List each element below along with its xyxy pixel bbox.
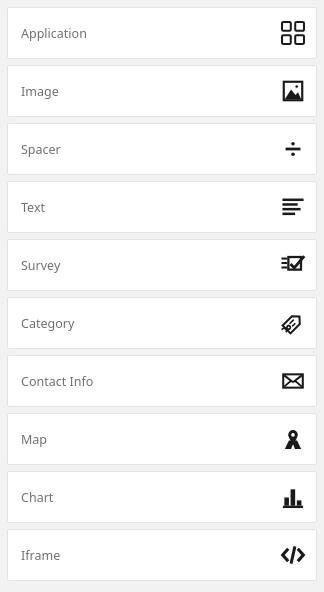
staticText: Text bbox=[21, 199, 281, 216]
staticText: Spacer bbox=[21, 141, 281, 158]
button[interactable]: Text bbox=[7, 181, 317, 233]
other: Application bbox=[281, 21, 305, 45]
button[interactable]: Spacer bbox=[7, 123, 317, 175]
other: Spacer bbox=[281, 137, 305, 161]
button[interactable]: Survey bbox=[7, 239, 317, 291]
button[interactable]: Image bbox=[7, 65, 317, 117]
staticText: Category bbox=[21, 315, 281, 332]
staticText: Survey bbox=[21, 257, 281, 274]
staticText: Iframe bbox=[21, 547, 281, 564]
staticText: Application bbox=[21, 25, 281, 42]
button[interactable]: Contact Info bbox=[7, 355, 317, 407]
button[interactable]: Iframe bbox=[7, 529, 317, 581]
other: Category bbox=[281, 311, 305, 335]
button[interactable]: Application bbox=[7, 7, 317, 59]
other: Image bbox=[281, 79, 305, 103]
other: Map bbox=[281, 427, 305, 451]
button[interactable]: Chart bbox=[7, 471, 317, 523]
staticText: Image bbox=[21, 83, 281, 100]
other: Iframe bbox=[281, 543, 305, 567]
other: Text bbox=[281, 195, 305, 219]
staticText: Chart bbox=[21, 489, 281, 506]
button[interactable]: Category bbox=[7, 297, 317, 349]
other: Survey bbox=[281, 253, 305, 277]
button[interactable]: Map bbox=[7, 413, 317, 465]
staticText: Map bbox=[21, 431, 281, 448]
other: Contact Info bbox=[281, 369, 305, 393]
other: Chart bbox=[281, 485, 305, 509]
staticText: Contact Info bbox=[21, 373, 281, 390]
